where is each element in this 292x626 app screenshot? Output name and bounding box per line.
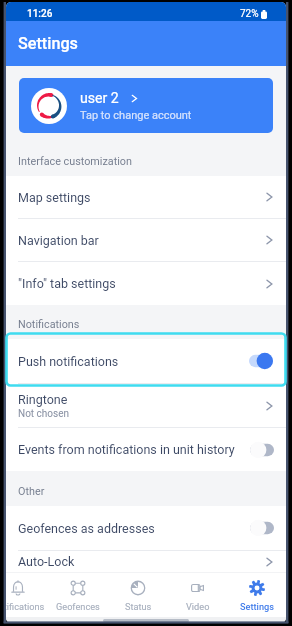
staticText: Geofences as addresses xyxy=(18,521,155,536)
staticText: Map settings xyxy=(18,190,91,205)
staticText: Auto-Lock xyxy=(18,554,75,569)
button[interactable]: user 2 xyxy=(19,78,273,133)
staticText: Video xyxy=(186,601,210,612)
button[interactable]: Geofences xyxy=(48,573,108,617)
button[interactable]: "Info" tab settings xyxy=(6,262,286,305)
staticText: Navigation bar xyxy=(18,233,99,248)
button[interactable]: Ringtone xyxy=(6,384,286,427)
button[interactable]: Status xyxy=(108,573,168,617)
button[interactable]: Video xyxy=(168,573,228,617)
staticText: Other xyxy=(18,485,45,498)
staticText: Settings xyxy=(18,34,78,53)
staticText: 72% xyxy=(240,8,259,20)
button[interactable]: Notifications xyxy=(6,573,48,617)
button[interactable]: Map settings xyxy=(6,176,286,218)
staticText: Notifications xyxy=(6,601,45,612)
button[interactable]: Geofences as addresses xyxy=(6,506,286,550)
button[interactable]: Events from notifications in unit histor… xyxy=(6,428,286,471)
staticText: Interface customization xyxy=(18,155,132,168)
staticText: 11:26 xyxy=(27,8,53,20)
button[interactable]: Push notifications xyxy=(6,339,286,383)
staticText: Events from notifications in unit histor… xyxy=(18,442,235,457)
staticText: Notifications xyxy=(18,318,80,331)
staticText: Tap to change account xyxy=(80,109,192,122)
staticText: Settings xyxy=(240,601,275,612)
staticText: Ringtone xyxy=(18,392,68,407)
button[interactable]: Settings xyxy=(228,573,286,617)
button[interactable]: Auto-Lock xyxy=(6,551,286,572)
staticText: Not chosen xyxy=(18,408,70,420)
button[interactable]: Navigation bar xyxy=(6,219,286,261)
staticText: "Info" tab settings xyxy=(18,276,116,291)
staticText: Push notifications xyxy=(18,354,119,369)
staticText: Geofences xyxy=(56,601,100,612)
staticText: Status xyxy=(125,601,152,612)
staticText: user 2 xyxy=(80,90,119,107)
